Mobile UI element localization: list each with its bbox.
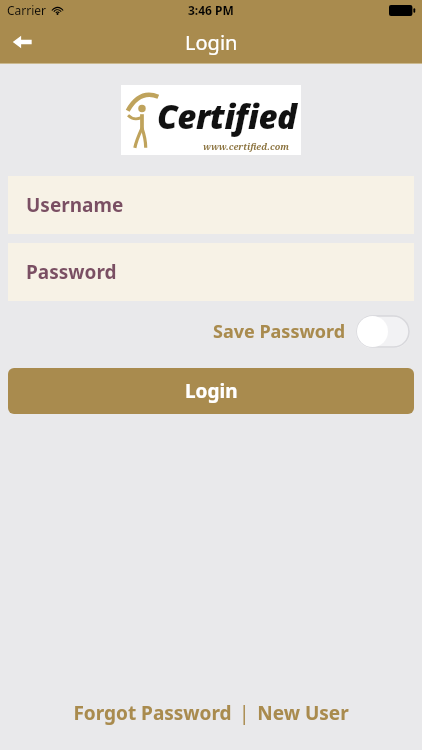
button[interactable]: Password xyxy=(8,243,414,301)
staticText: New User xyxy=(257,700,349,726)
staticText: Carrier xyxy=(7,2,47,18)
staticText: Certified xyxy=(157,94,297,139)
staticText: Save Password xyxy=(213,319,346,344)
button[interactable]: Back xyxy=(0,20,44,64)
button[interactable]: Username xyxy=(8,176,414,234)
staticText: Login xyxy=(185,378,238,404)
staticText: Password xyxy=(26,259,117,285)
staticText: | xyxy=(234,700,255,726)
button[interactable]: Login xyxy=(8,368,414,414)
staticText: Username xyxy=(26,192,124,218)
button[interactable]: Forgot Password xyxy=(71,694,234,732)
staticText: www.certified.com xyxy=(203,140,289,152)
staticText: Forgot Password xyxy=(73,700,232,726)
staticText: 3:46 PM xyxy=(188,2,234,18)
button[interactable]: New User xyxy=(255,694,351,732)
staticText: Login xyxy=(185,29,238,56)
button[interactable]: Save Password xyxy=(205,315,410,348)
